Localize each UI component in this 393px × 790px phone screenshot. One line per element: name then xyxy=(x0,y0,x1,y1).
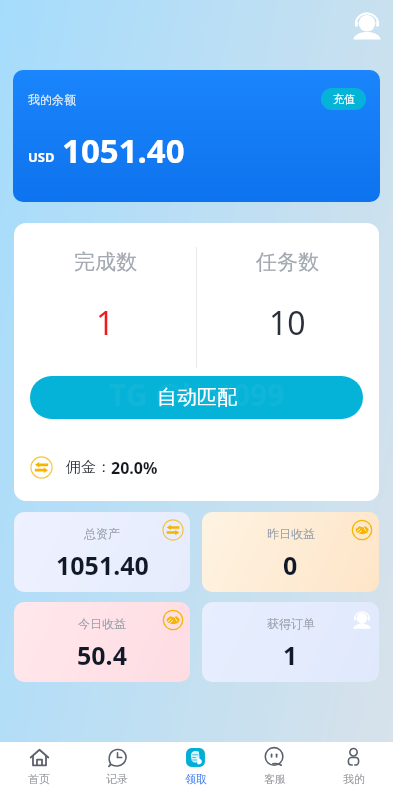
staticText: 任务数 xyxy=(256,249,319,275)
staticText: 我的 xyxy=(343,772,365,786)
button[interactable]: 我的余额 xyxy=(13,70,380,202)
staticText: 记录 xyxy=(106,772,128,786)
button[interactable]: 我的 xyxy=(314,742,393,790)
button[interactable]: 任务数 xyxy=(196,249,379,345)
staticText: 获得订单 xyxy=(267,616,315,631)
button[interactable]: 记录 xyxy=(78,742,156,790)
button[interactable]: 完成数 xyxy=(14,249,196,345)
button[interactable]: 充值 xyxy=(321,88,366,110)
button[interactable]: 领取 xyxy=(156,742,235,790)
staticText: USD xyxy=(28,148,55,166)
staticText: 昨日收益 xyxy=(267,526,315,541)
staticText: 20.0% xyxy=(111,457,158,479)
staticText: 佣金： xyxy=(66,458,111,477)
button[interactable]: 客服 xyxy=(235,742,314,790)
staticText: 0 xyxy=(283,548,298,582)
button[interactable]: 首页 xyxy=(0,742,78,790)
button[interactable]: Customer service xyxy=(350,9,384,43)
staticText: 1 xyxy=(96,301,115,345)
staticText: 首页 xyxy=(28,772,50,786)
button[interactable]: 总资产 xyxy=(14,512,190,592)
staticText: 充值 xyxy=(333,92,355,106)
staticText: 10 xyxy=(269,301,306,345)
button[interactable]: 今日收益 xyxy=(14,602,190,682)
staticText: 50.4 xyxy=(77,638,127,672)
button[interactable]: 获得订单 xyxy=(202,602,379,682)
staticText: 完成数 xyxy=(74,249,137,275)
staticText: 1051.40 xyxy=(56,548,149,582)
staticText: 领取 xyxy=(185,772,207,786)
staticText: 今日收益 xyxy=(78,616,126,631)
button[interactable]: TG @bot099 xyxy=(30,376,363,419)
staticText: 总资产 xyxy=(84,526,120,541)
staticText: 客服 xyxy=(264,772,286,786)
staticText: 自动匹配 xyxy=(157,385,237,410)
button[interactable]: 昨日收益 xyxy=(202,512,379,592)
staticText: TG @bot099 xyxy=(109,376,285,415)
staticText: 1 xyxy=(283,638,298,672)
staticText: 1051.40 xyxy=(62,128,185,173)
staticText: 我的余额 xyxy=(28,92,76,107)
